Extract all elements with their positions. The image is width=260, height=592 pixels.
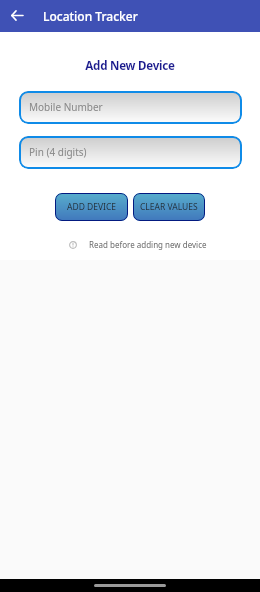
button[interactable]: Back xyxy=(4,4,29,29)
staticText: Pin (4 digits) xyxy=(29,145,87,159)
staticText: Location Tracker xyxy=(43,8,138,24)
staticText: CLEAR VALUES xyxy=(140,201,198,213)
button[interactable]: ADD DEVICE xyxy=(55,193,128,221)
staticText: Mobile Number xyxy=(29,100,103,114)
staticText: Read before adding new device xyxy=(89,239,207,250)
button[interactable]: CLEAR VALUES xyxy=(133,193,205,221)
staticText: ADD DEVICE xyxy=(67,201,117,213)
button[interactable]: Mobile Number xyxy=(19,91,242,124)
staticText: Add New Device xyxy=(0,58,260,74)
button[interactable]: Pin (4 digits) xyxy=(19,136,242,169)
